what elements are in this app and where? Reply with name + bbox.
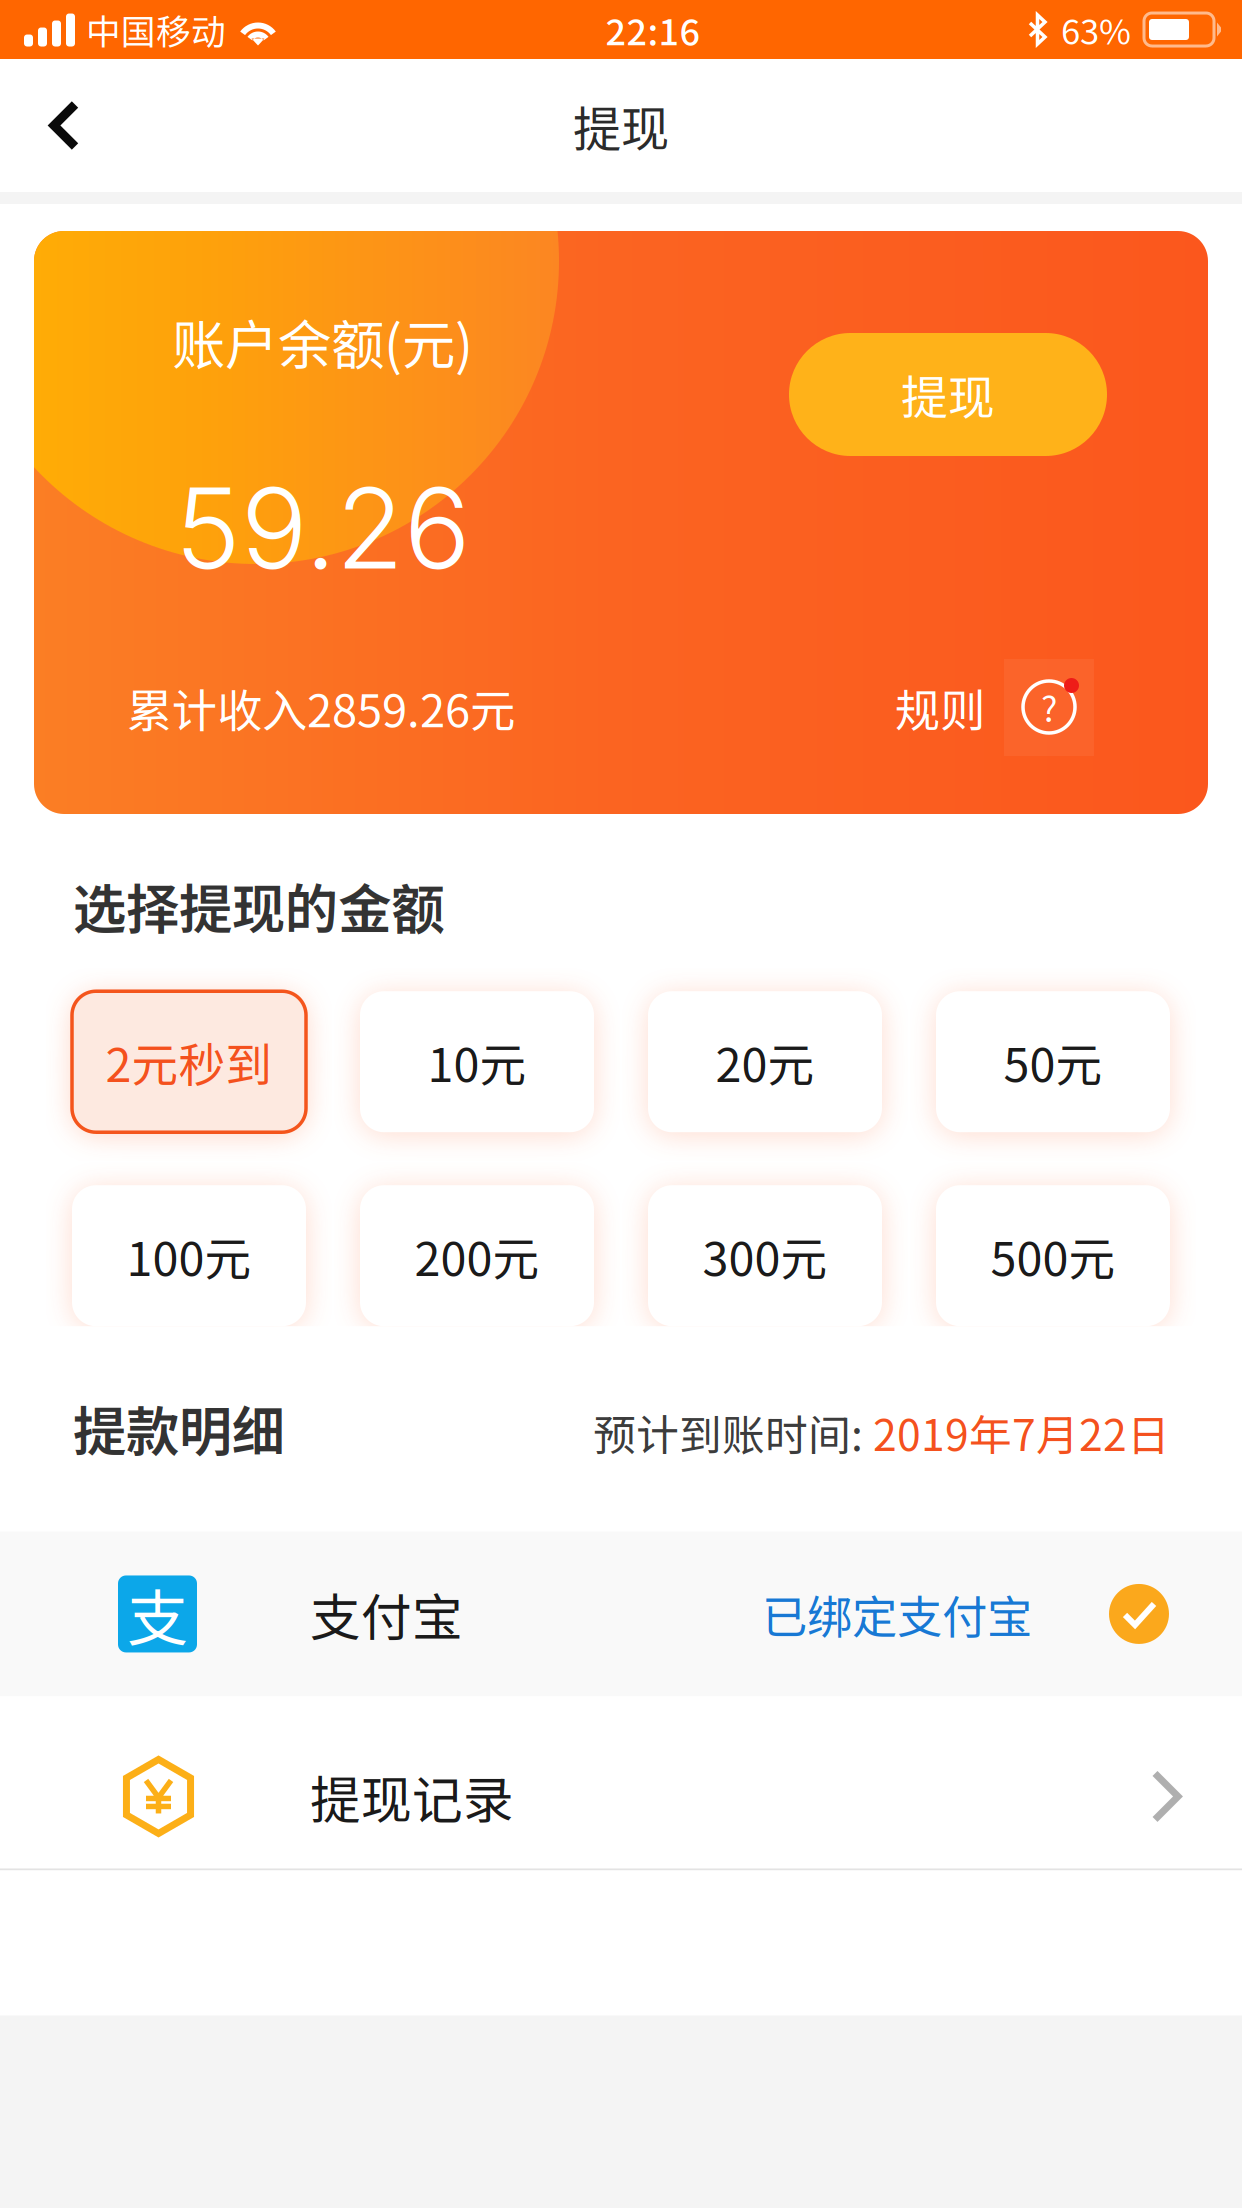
- staticText: 10元: [427, 1028, 526, 1095]
- staticText: 59.26: [175, 461, 471, 595]
- staticText: 22:16: [605, 3, 700, 55]
- button[interactable]: Back: [0, 59, 113, 191]
- button[interactable]: 2元秒到: [72, 991, 306, 1132]
- staticText: 200元: [414, 1222, 539, 1289]
- button[interactable]: 300元: [648, 1185, 882, 1326]
- staticText: 累计收入2859.26元: [127, 675, 515, 740]
- staticText: 100元: [126, 1222, 251, 1289]
- staticText: 提现: [901, 361, 995, 428]
- button[interactable]: 10元: [360, 991, 594, 1132]
- button[interactable]: 100元: [72, 1185, 306, 1326]
- staticText: 2元秒到: [105, 1028, 272, 1095]
- staticText: 500元: [990, 1222, 1115, 1289]
- staticText: 已绑定支付宝: [762, 1581, 1032, 1647]
- staticText: 300元: [702, 1222, 827, 1289]
- staticText: 规则: [895, 675, 985, 740]
- staticText: 账户余额(元): [172, 303, 473, 380]
- staticText: 中国移动: [86, 4, 226, 55]
- staticText: 2019年7月22日: [873, 1402, 1170, 1463]
- staticText: 50元: [1003, 1028, 1102, 1095]
- staticText: 20元: [715, 1028, 814, 1095]
- button[interactable]: 50元: [936, 991, 1170, 1132]
- staticText: 预计到账时间:: [593, 1402, 873, 1463]
- button[interactable]: 支: [0, 1531, 1242, 1696]
- button[interactable]: 规则: [895, 659, 1101, 756]
- staticText: 支付宝: [310, 1577, 463, 1651]
- button[interactable]: 提现记录: [0, 1696, 1242, 1868]
- button[interactable]: 20元: [648, 991, 882, 1132]
- button[interactable]: 提现: [789, 333, 1107, 456]
- button[interactable]: 200元: [360, 1185, 594, 1326]
- staticText: 提现: [573, 91, 669, 160]
- staticText: 选择提现的金额: [73, 867, 444, 944]
- staticText: 63%: [1061, 4, 1131, 55]
- button[interactable]: 500元: [936, 1185, 1170, 1326]
- staticText: 提款明细: [73, 1389, 285, 1466]
- staticText: 提现记录: [310, 1760, 514, 1833]
- staticText: ?: [1041, 682, 1057, 732]
- staticText: 支: [127, 1569, 188, 1658]
